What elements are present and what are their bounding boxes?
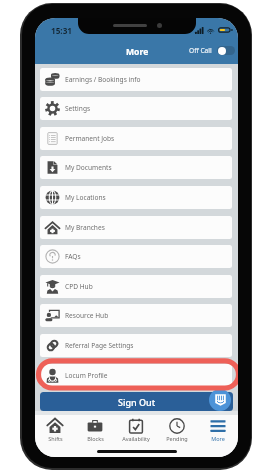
staticText: Sign Out (118, 396, 156, 408)
staticText: 15:31 (51, 25, 73, 36)
button[interactable]: Earnings / Bookings info (40, 68, 232, 91)
staticText: Settings (65, 104, 91, 113)
button[interactable]: Availability (115, 418, 156, 442)
button[interactable]: More (197, 418, 238, 442)
staticText: My Branches (65, 223, 105, 232)
staticText: Off Call (189, 46, 212, 55)
button[interactable]: My Documents (40, 156, 232, 179)
button[interactable]: My Locations (40, 186, 232, 209)
button[interactable]: Off Call toggle (217, 46, 235, 55)
staticText: Availability (122, 435, 150, 442)
button[interactable]: CPD Hub (40, 275, 232, 298)
staticText: My Locations (65, 193, 106, 202)
button[interactable]: Shifts (35, 418, 75, 442)
staticText: Shifts (48, 435, 63, 442)
staticText: CPD Hub (65, 282, 93, 291)
staticText: Earnings / Bookings info (65, 75, 141, 84)
staticText: Pending (166, 435, 188, 442)
staticText: Locum Profile (65, 371, 108, 380)
button[interactable]: Permanent Jobs (40, 127, 232, 150)
button[interactable]: Locum Profile (40, 364, 232, 387)
button[interactable]: FAQs (40, 245, 232, 268)
button[interactable]: Settings (40, 97, 232, 120)
button[interactable]: Scan barcode (209, 389, 231, 411)
staticText: Resource Hub (65, 311, 109, 320)
staticText: Referral Page Settings (65, 341, 134, 350)
staticText: More (211, 435, 225, 442)
button[interactable]: My Branches (40, 216, 232, 239)
staticText: Permanent Jobs (65, 134, 115, 143)
button[interactable]: Referral Page Settings (40, 334, 232, 357)
staticText: My Documents (65, 163, 112, 172)
button[interactable]: Resource Hub (40, 304, 232, 327)
button[interactable]: Sign Out (40, 392, 233, 411)
button[interactable]: Blocks (75, 418, 115, 442)
staticText: Blocks (87, 435, 104, 442)
staticText: More (126, 46, 149, 58)
button[interactable]: Pending (156, 418, 197, 442)
staticText: FAQs (65, 252, 81, 261)
